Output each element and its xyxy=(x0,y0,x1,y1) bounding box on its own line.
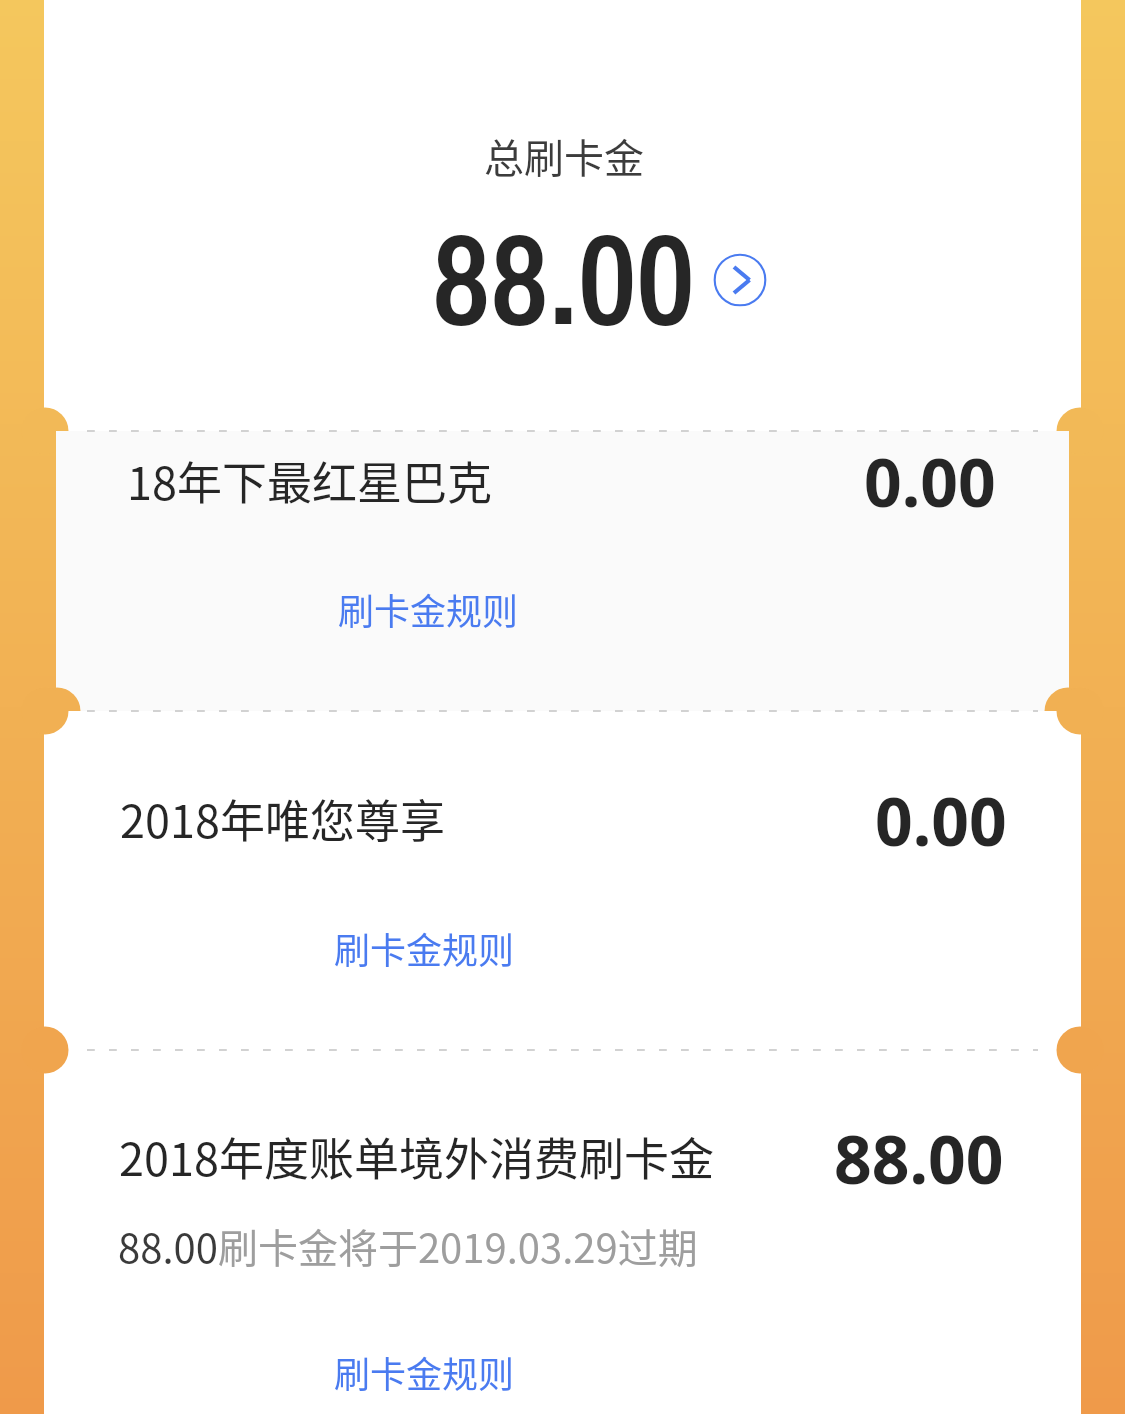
staticText: 18年下最红星巴克 xyxy=(127,448,492,513)
staticText: 刷卡金规则 xyxy=(334,1346,515,1398)
staticText: 88.00刷卡金将于2019.03.29过期 xyxy=(118,1217,698,1275)
staticText: 刷卡金规则 xyxy=(334,922,515,974)
button[interactable]: 2018年唯您尊享 xyxy=(44,712,1081,862)
staticText: 0.00 xyxy=(875,775,1007,865)
staticText: 刷卡金规则 xyxy=(338,583,519,635)
button[interactable]: 刷卡金规则 xyxy=(332,577,525,641)
staticText: 88.00 xyxy=(432,192,695,364)
button[interactable]: 刷卡金规则 xyxy=(328,1340,521,1404)
button[interactable]: View card cash details xyxy=(712,252,768,308)
staticText: 2018年度账单境外消费刷卡金 xyxy=(119,1124,714,1189)
button[interactable]: 刷卡金规则 xyxy=(328,916,521,980)
staticText: 0.00 xyxy=(864,436,996,526)
button[interactable]: 2018年度账单境外消费刷卡金 xyxy=(44,1051,1081,1196)
staticText: 总刷卡金 xyxy=(484,127,644,185)
staticText: 88.00 xyxy=(834,1113,1004,1203)
staticText: 2018年唯您尊享 xyxy=(120,786,445,851)
button[interactable]: 18年下最红星巴克 xyxy=(56,432,1069,550)
